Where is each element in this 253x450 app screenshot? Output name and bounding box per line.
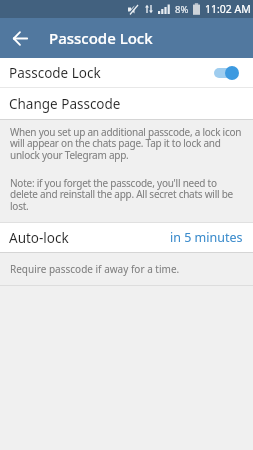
staticText: Change Passcode — [9, 95, 121, 113]
staticText: 8% — [175, 3, 189, 16]
staticText: Note: if you forget the passcode, you'll… — [10, 176, 233, 213]
staticText: Passcode Lock — [49, 28, 153, 48]
staticText: Require passcode if away for a time. — [10, 262, 180, 276]
staticText: Auto-lock — [9, 229, 69, 247]
button[interactable]: Change Passcode — [0, 88, 253, 119]
staticText: 11:02 AM — [205, 2, 251, 16]
staticText: Passcode Lock — [9, 64, 101, 82]
button[interactable] — [214, 66, 239, 80]
staticText: When you set up an additional passcode, … — [10, 125, 242, 162]
staticText: in 5 minutes — [170, 229, 243, 246]
button[interactable] — [0, 18, 40, 58]
button[interactable]: Passcode Lock — [0, 58, 253, 87]
button[interactable]: Auto-lock — [0, 223, 253, 252]
